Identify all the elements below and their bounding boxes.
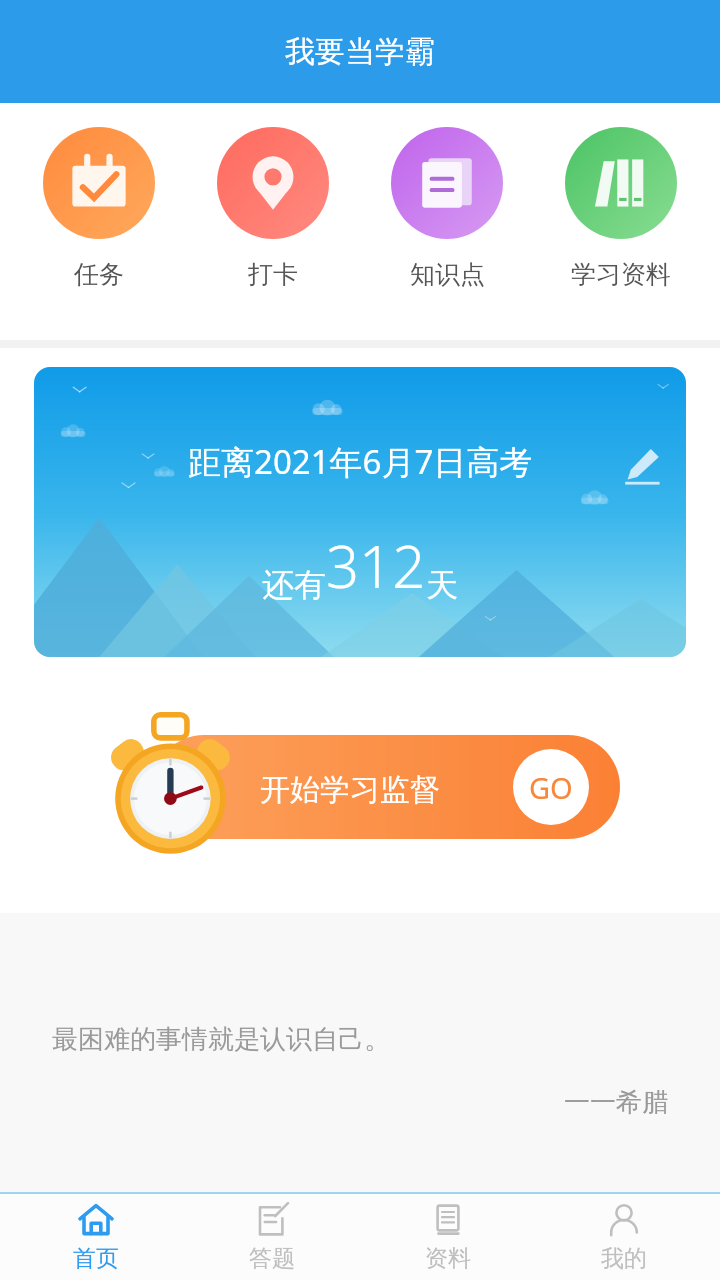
staticText: 首页: [73, 1244, 119, 1273]
button[interactable]: 开始学习监督: [100, 703, 620, 871]
staticText: 资料: [425, 1244, 471, 1273]
staticText: 知识点: [410, 259, 485, 290]
staticText: 开始学习监督: [260, 771, 440, 809]
staticText: 任务: [74, 259, 124, 290]
staticText: GO: [529, 768, 573, 807]
staticText: 学习资料: [571, 259, 671, 290]
button[interactable]: 知识点: [372, 103, 522, 290]
staticText: 距离2021年6月7日高考: [188, 439, 533, 484]
button[interactable]: 编辑倒计时: [614, 437, 670, 493]
staticText: 还有: [262, 565, 326, 605]
staticText: 最困难的事情就是认识自己。: [52, 1023, 390, 1056]
button[interactable]: 学习资料: [546, 103, 696, 290]
button[interactable]: GO: [513, 749, 589, 825]
staticText: 打卡: [248, 259, 298, 290]
button[interactable]: 打卡: [198, 103, 348, 290]
staticText: 一一希腊: [564, 1086, 668, 1119]
staticText: 312: [326, 526, 426, 605]
staticText: 答题: [249, 1244, 295, 1273]
button[interactable]: 资料: [368, 1200, 528, 1273]
staticText: 我的: [601, 1244, 647, 1273]
staticText: 我要当学霸: [285, 33, 435, 71]
button[interactable]: 我的: [544, 1200, 704, 1273]
button[interactable]: 距离2021年6月7日高考: [34, 367, 686, 657]
button[interactable]: 首页: [16, 1200, 176, 1273]
staticText: 天: [426, 565, 458, 605]
button[interactable]: 任务: [24, 103, 174, 290]
button[interactable]: 答题: [192, 1200, 352, 1273]
